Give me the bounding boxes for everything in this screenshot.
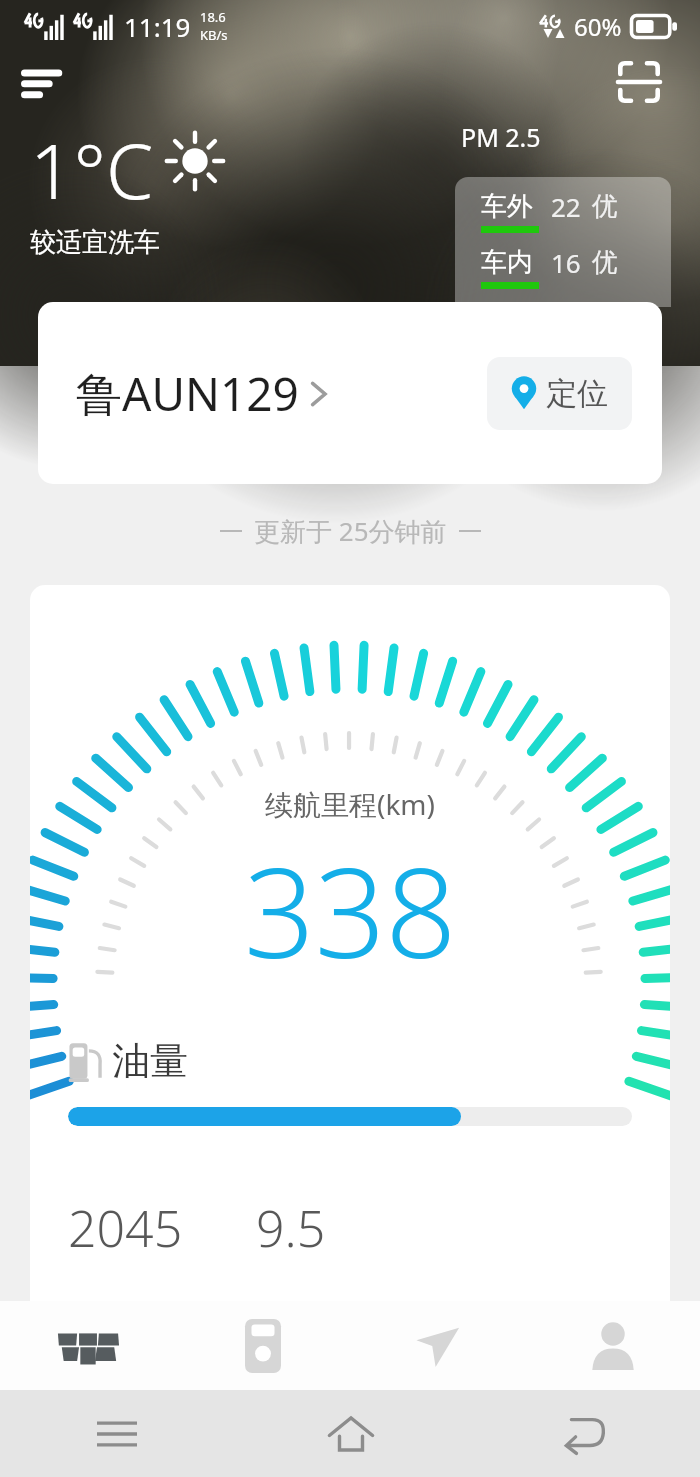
- staticText: 更新于 25分钟前: [254, 513, 447, 549]
- staticText: 车外: [481, 190, 533, 223]
- staticText: 60%: [574, 10, 622, 43]
- staticText: 车内: [481, 246, 533, 279]
- button[interactable]: Navigation: [350, 1301, 525, 1390]
- staticText: 16: [551, 245, 581, 280]
- staticText: KB/s: [200, 26, 228, 44]
- button[interactable]: 续航里程(km): [30, 585, 670, 1301]
- button[interactable]: Back: [467, 1390, 700, 1477]
- button[interactable]: Home: [234, 1390, 467, 1477]
- button[interactable]: 定位: [487, 357, 632, 430]
- button[interactable]: Menu: [12, 56, 78, 108]
- staticText: 22: [551, 189, 581, 224]
- button[interactable]: 车外: [455, 177, 671, 307]
- staticText: 较适宜洗车: [30, 226, 160, 259]
- staticText: 鲁AUN129: [76, 362, 299, 425]
- button[interactable]: Scan QR code: [608, 54, 670, 110]
- staticText: 优: [592, 190, 618, 223]
- staticText: 11:19: [124, 9, 191, 44]
- button[interactable]: Vehicle: [0, 1301, 175, 1390]
- staticText: 9.5: [256, 1194, 326, 1262]
- staticText: PM 2.5: [461, 120, 541, 154]
- staticText: 1°C: [30, 118, 154, 222]
- button[interactable]: 鲁AUN129: [76, 354, 329, 433]
- button[interactable]: Recent apps: [0, 1390, 234, 1477]
- staticText: 338: [244, 825, 457, 994]
- button[interactable]: Remote control: [175, 1301, 350, 1390]
- staticText: 定位: [546, 374, 608, 413]
- staticText: 优: [592, 246, 618, 279]
- staticText: 2045: [68, 1194, 183, 1262]
- staticText: 油量: [112, 1037, 188, 1085]
- staticText: 续航里程(km): [265, 785, 435, 823]
- button[interactable]: Profile: [525, 1301, 700, 1390]
- staticText: 18.6: [200, 8, 226, 26]
